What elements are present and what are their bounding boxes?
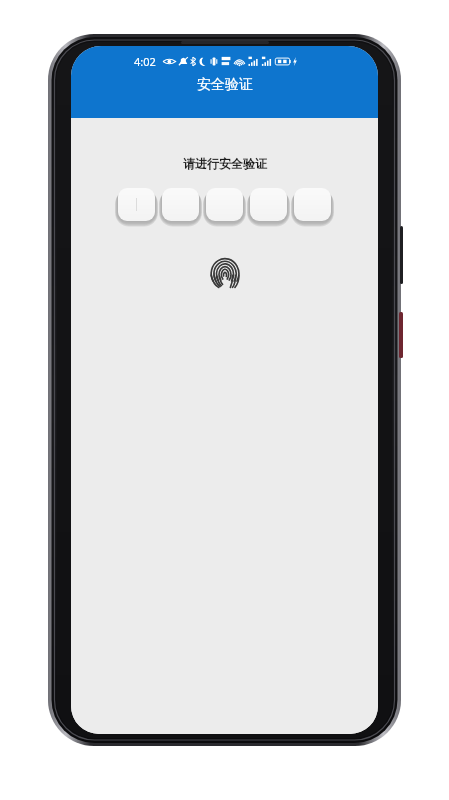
button[interactable] [162, 188, 199, 221]
button[interactable] [206, 188, 243, 221]
staticText: 安全验证 [197, 76, 253, 94]
button[interactable] [250, 188, 287, 221]
staticText: 4:02 [134, 54, 156, 69]
staticText: 请进行安全验证 [183, 156, 267, 171]
button[interactable] [118, 188, 155, 221]
button[interactable]: Fingerprint authentication [203, 251, 247, 295]
button[interactable] [294, 188, 331, 221]
